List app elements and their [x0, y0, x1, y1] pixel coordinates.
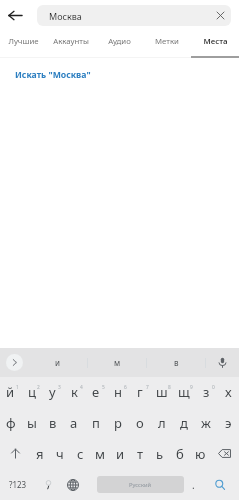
button[interactable]: и — [110, 438, 130, 469]
staticText: ы — [27, 414, 37, 432]
staticText: 9 — [190, 384, 193, 391]
button[interactable]: ч — [50, 438, 70, 469]
staticText: Аккаунты — [53, 36, 89, 47]
staticText: 0 — [212, 384, 215, 391]
button[interactable]: м — [90, 438, 110, 469]
staticText: 7 — [146, 384, 149, 391]
button[interactable]: т — [130, 438, 150, 469]
button[interactable]: Москва — [37, 5, 231, 26]
button[interactable]: ф — [0, 407, 21, 438]
button[interactable]: б — [170, 438, 190, 469]
button[interactable]: Back — [0, 0, 30, 30]
staticText: ч — [56, 445, 64, 463]
button[interactable]: ю — [190, 438, 210, 469]
staticText: 6 — [124, 384, 127, 391]
staticText: ш — [156, 383, 168, 401]
staticText: с — [77, 445, 84, 463]
button[interactable]: о — [129, 407, 151, 438]
staticText: ж — [201, 414, 211, 432]
button[interactable]: а — [63, 407, 85, 438]
staticText: Русский — [129, 481, 152, 489]
button[interactable]: х — [217, 377, 239, 407]
button[interactable]: ы — [21, 407, 42, 438]
staticText: ф — [6, 414, 16, 432]
staticText: к — [71, 383, 78, 401]
staticText: м — [95, 445, 105, 463]
button[interactable]: п — [85, 407, 107, 438]
staticText: . — [192, 478, 195, 492]
staticText: я — [36, 445, 44, 463]
button[interactable]: Лучшие — [0, 30, 47, 58]
staticText: й — [6, 383, 15, 401]
button[interactable]: Места — [191, 30, 239, 58]
button[interactable]: с — [70, 438, 90, 469]
staticText: л — [158, 414, 166, 432]
staticText: Метки — [155, 36, 179, 47]
button[interactable]: у — [42, 377, 63, 407]
button[interactable]: Аудио — [95, 30, 143, 58]
staticText: м — [114, 357, 121, 368]
staticText: и — [55, 357, 60, 368]
button[interactable]: м — [88, 348, 146, 377]
button[interactable]: Shift — [0, 438, 30, 469]
button[interactable]: э — [217, 407, 239, 438]
staticText: Места — [203, 36, 228, 47]
button[interactable]: к — [63, 377, 85, 407]
button[interactable]: д — [173, 407, 195, 438]
button[interactable]: в — [147, 348, 205, 377]
staticText: р — [114, 414, 122, 432]
staticText: д — [180, 414, 188, 432]
button[interactable]: я — [30, 438, 50, 469]
staticText: щ — [178, 383, 190, 401]
button[interactable]: е — [85, 377, 107, 407]
button[interactable]: г — [129, 377, 151, 407]
staticText: н — [114, 383, 122, 401]
button[interactable]: Voice input — [206, 348, 239, 377]
staticText: х — [225, 383, 232, 401]
button[interactable]: Русский — [97, 476, 184, 493]
button[interactable]: Expand suggestions — [0, 348, 28, 377]
button[interactable]: Backspace — [210, 438, 239, 469]
staticText: в — [49, 414, 57, 432]
button[interactable]: и — [28, 348, 87, 377]
staticText: 5 — [102, 384, 105, 391]
button[interactable]: в — [42, 407, 63, 438]
staticText: ю — [195, 445, 206, 463]
staticText: в — [174, 357, 179, 368]
button[interactable]: ц — [21, 377, 42, 407]
button[interactable]: й — [0, 377, 21, 407]
button[interactable]: з — [195, 377, 217, 407]
button[interactable]: ж — [195, 407, 217, 438]
button[interactable]: Метки — [143, 30, 191, 58]
staticText: о — [136, 414, 144, 432]
button[interactable]: Clear search — [209, 5, 231, 26]
staticText: п — [92, 414, 100, 432]
button[interactable]: ь — [150, 438, 170, 469]
button[interactable]: Search — [201, 469, 239, 500]
staticText: Лучшие — [8, 36, 39, 47]
staticText: Искать "Москва" — [15, 69, 91, 81]
staticText: 2 — [37, 384, 40, 391]
staticText: Аудио — [108, 36, 131, 47]
staticText: 8 — [168, 384, 171, 391]
button[interactable]: щ — [173, 377, 195, 407]
button[interactable]: л — [151, 407, 173, 438]
button[interactable]: н — [107, 377, 129, 407]
button[interactable]: Аккаунты — [47, 30, 95, 58]
button[interactable]: Emoji — [36, 469, 60, 500]
staticText: Москва — [49, 10, 209, 22]
staticText: 3 — [58, 384, 61, 391]
staticText: т — [137, 445, 144, 463]
button[interactable]: . — [185, 469, 201, 500]
staticText: ь — [156, 445, 164, 463]
staticText: е — [92, 383, 100, 401]
staticText: 4 — [80, 384, 83, 391]
button[interactable]: ?123 — [0, 469, 36, 500]
staticText: э — [225, 414, 232, 432]
button[interactable]: Change keyboard language — [60, 469, 85, 500]
staticText: у — [49, 383, 56, 401]
staticText: г — [137, 383, 143, 401]
button[interactable]: р — [107, 407, 129, 438]
button[interactable]: ш — [151, 377, 173, 407]
button[interactable]: Искать "Москва" — [0, 58, 239, 94]
